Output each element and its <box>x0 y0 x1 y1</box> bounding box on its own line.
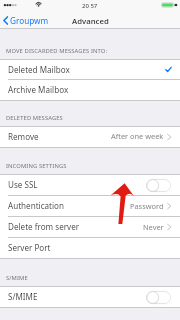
staticText: DELETED MESSAGES <box>6 114 63 122</box>
button[interactable]: Delete from server <box>0 217 180 238</box>
staticText: MOVE DISCARDED MESSAGES INTO: <box>6 47 108 55</box>
button[interactable]: Server Port <box>0 238 180 258</box>
staticText: Server Port <box>8 242 51 253</box>
button[interactable]: Use SSL <box>146 178 172 193</box>
button[interactable]: Groupwm <box>0 13 53 28</box>
staticText: Deleted Mailbox <box>8 64 70 75</box>
button[interactable]: Deleted Mailbox <box>0 60 180 80</box>
staticText: Use SSL <box>8 179 38 190</box>
staticText: Remove <box>8 131 39 142</box>
staticText: S/MIME <box>6 274 28 282</box>
button[interactable]: S/MIME <box>146 290 172 305</box>
staticText: Authentication <box>8 200 65 211</box>
staticText: 20 57 <box>82 2 98 10</box>
button[interactable]: Archive Mailbox <box>0 80 180 100</box>
staticText: INCOMING SETTINGS <box>6 162 67 170</box>
button[interactable]: Remove <box>0 127 180 147</box>
staticText: After one week <box>111 131 164 141</box>
staticText: Password <box>130 201 164 211</box>
staticText: Advanced <box>72 16 109 26</box>
staticText: S/MIME <box>8 291 38 302</box>
staticText: Archive Mailbox <box>8 84 69 95</box>
button[interactable]: Authentication <box>0 196 180 217</box>
button[interactable]: S/MIME <box>0 287 180 307</box>
staticText: Delete from server <box>8 221 80 232</box>
staticText: Groupwm <box>10 15 49 26</box>
button[interactable]: Use SSL <box>0 175 180 196</box>
staticText: Never <box>143 222 164 232</box>
